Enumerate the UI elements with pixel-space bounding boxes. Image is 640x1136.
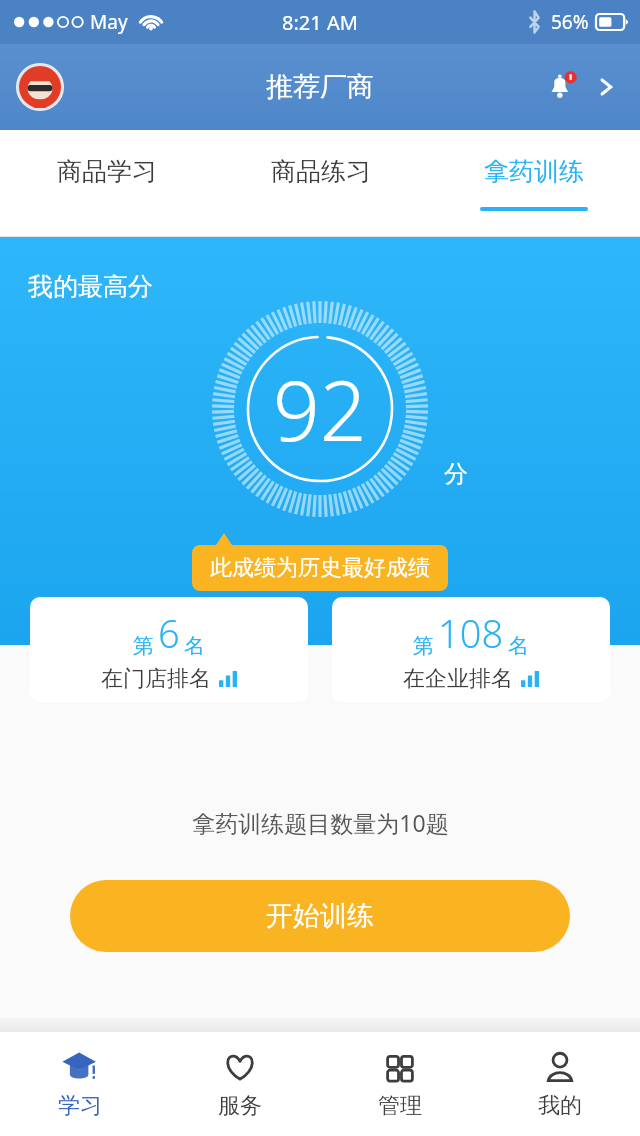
button[interactable]: 服务 [160,1032,320,1136]
staticText: 我的 [538,1092,582,1120]
button[interactable]: 学习 [0,1032,160,1136]
button[interactable]: 此成绩为历史最好成绩 [192,545,448,591]
staticText: 108 [438,607,504,659]
staticText: 开始训练 [266,899,374,933]
staticText: 名 [184,633,205,659]
button[interactable]: 第 [30,597,308,702]
button[interactable]: 我的 [480,1032,640,1136]
staticText: 在门店排名 [101,665,211,693]
staticText: 6 [158,607,180,659]
staticText: 此成绩为历史最好成绩 [210,554,430,582]
button[interactable]: 拿药训练 [427,130,640,237]
staticText: 第 [413,633,434,659]
staticText: 拿药训练 [484,156,584,187]
staticText: 92 [273,353,367,465]
staticText: 学习 [58,1092,102,1120]
staticText: 分 [444,459,468,489]
button[interactable]: Profile avatar [16,63,64,111]
staticText: 名 [508,633,529,659]
staticText: 56% [551,9,589,35]
button[interactable]: 管理 [320,1032,480,1136]
staticText: May [90,9,128,35]
button[interactable]: More [586,67,626,107]
staticText: 服务 [218,1092,262,1120]
staticText: 拿药训练题目数量为10题 [192,807,449,838]
button[interactable]: Notifications, 1 unread [542,67,582,107]
staticText: 在企业排名 [403,665,513,693]
button[interactable]: 开始训练 [70,880,570,952]
staticText: 推荐厂商 [266,70,374,104]
button[interactable]: 商品练习 [214,130,427,237]
staticText: 商品学习 [57,156,157,187]
staticText: 管理 [378,1092,422,1120]
staticText: 第 [133,633,154,659]
staticText: 我的最高分 [28,271,153,302]
staticText: 8:21 AM [282,9,358,36]
button[interactable]: 第 [332,597,610,702]
staticText: 商品练习 [271,156,371,187]
button[interactable]: 商品学习 [0,130,214,237]
